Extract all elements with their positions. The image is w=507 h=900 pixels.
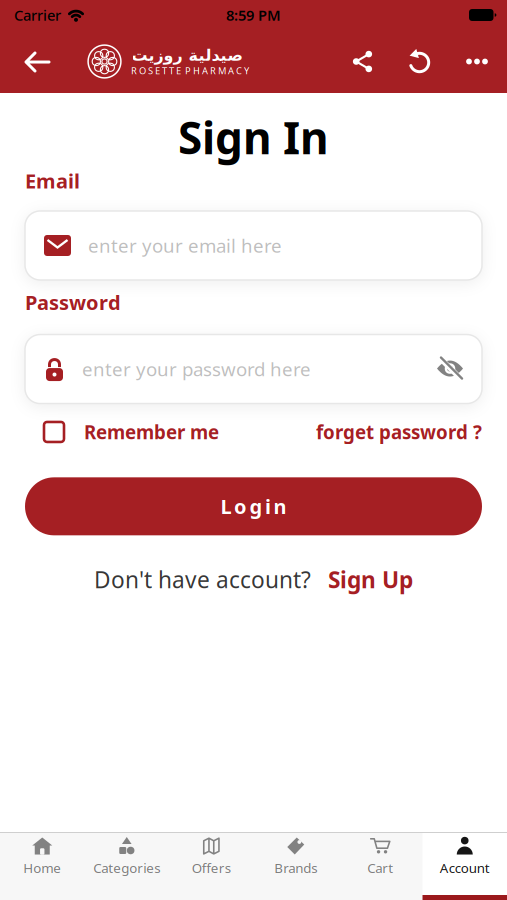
staticText: 8:59 PM <box>226 5 281 25</box>
button[interactable]: Show password <box>436 357 464 381</box>
button[interactable]: Home <box>0 833 84 900</box>
button[interactable]: Remember me <box>44 419 219 444</box>
button[interactable]: More options <box>466 58 488 64</box>
button[interactable]: Back <box>0 30 87 93</box>
button[interactable]: Share <box>352 50 373 72</box>
button[interactable]: Login <box>25 477 482 535</box>
button[interactable]: forget password ? <box>316 419 482 444</box>
staticText: Login <box>220 493 286 520</box>
staticText: صيدلية روزيت <box>131 46 242 64</box>
staticText: Remember me <box>84 419 219 444</box>
staticText: Account <box>440 859 490 877</box>
staticText: Sign In <box>178 108 329 166</box>
staticText: forget password ? <box>316 419 482 444</box>
staticText: Don't have account? <box>94 564 311 594</box>
button[interactable]: Cart <box>338 833 422 900</box>
staticText: Email <box>25 167 80 194</box>
staticText: Sign Up <box>328 564 413 594</box>
button[interactable]: Brands <box>253 833 338 900</box>
button[interactable]: Reload <box>407 48 432 74</box>
staticText: Offers <box>192 859 231 877</box>
button[interactable]: Categories <box>84 833 169 900</box>
staticText: Categories <box>93 859 160 877</box>
staticText: Carrier <box>14 5 61 25</box>
staticText: Cart <box>367 859 393 877</box>
button[interactable]: Account <box>422 833 507 900</box>
staticText: enter your email here <box>88 233 282 258</box>
staticText: R O S E T T E P H A R M A C Y <box>131 64 249 77</box>
staticText: Brands <box>274 859 317 877</box>
button[interactable]: Sign Up <box>328 564 413 594</box>
staticText: Home <box>23 859 61 877</box>
staticText: enter your password here <box>82 357 311 381</box>
staticText: Password <box>25 289 121 316</box>
button[interactable]: Offers <box>169 833 253 900</box>
